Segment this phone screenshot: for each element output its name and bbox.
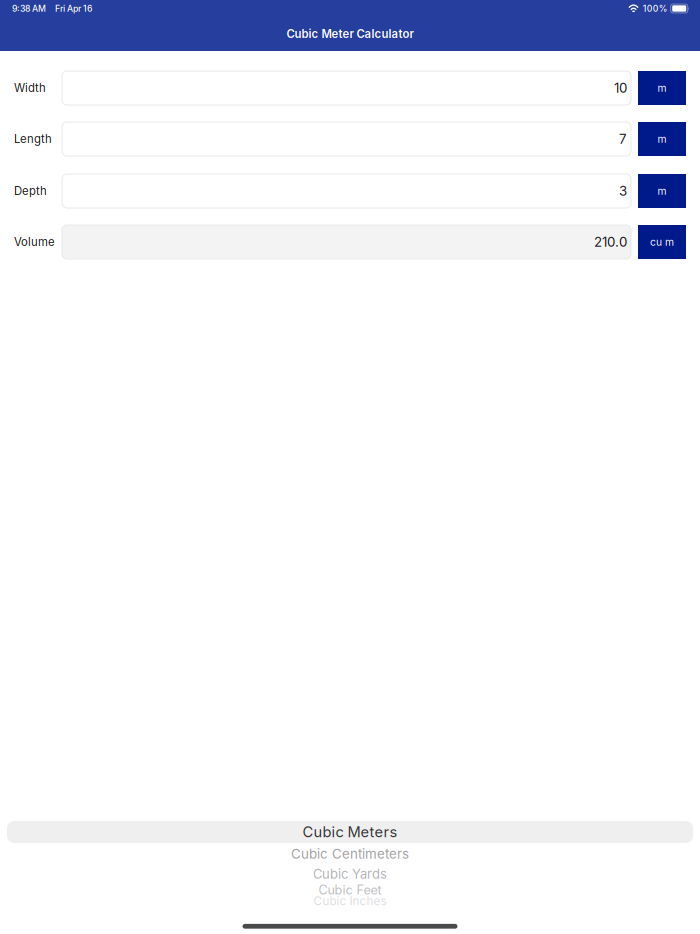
button[interactable]: m — [638, 71, 686, 105]
button[interactable]: cu m — [638, 225, 686, 259]
staticText: Length — [14, 132, 52, 146]
button[interactable]: 3 — [62, 174, 631, 208]
button[interactable]: Cubic Yards — [7, 865, 693, 883]
staticText: cu m — [650, 236, 674, 248]
staticText: m — [657, 133, 666, 145]
staticText: Cubic Inches — [313, 894, 386, 908]
button[interactable]: 10 — [62, 71, 631, 105]
staticText: m — [657, 185, 666, 197]
button[interactable]: Cubic Meters — [7, 821, 693, 843]
staticText: Cubic Centimeters — [291, 846, 409, 862]
staticText: Fri Apr 16 — [55, 3, 92, 14]
button[interactable]: Cubic Feet — [7, 882, 693, 898]
staticText: 10 — [614, 80, 627, 96]
staticText: Cubic Feet — [318, 882, 381, 898]
staticText: m — [657, 82, 666, 94]
staticText: Cubic Meter Calculator — [286, 27, 413, 41]
staticText: 7 — [619, 131, 627, 147]
staticText: Depth — [14, 184, 47, 198]
staticText: Cubic Meters — [302, 823, 397, 841]
button[interactable]: m — [638, 174, 686, 208]
staticText: 3 — [619, 183, 627, 199]
staticText: 100% — [643, 3, 668, 14]
button[interactable]: 210.0 — [62, 225, 631, 259]
staticText: Width — [14, 81, 46, 95]
button[interactable]: 7 — [62, 122, 631, 156]
staticText: 210.0 — [594, 234, 627, 250]
staticText: 9:38 AM — [12, 3, 46, 14]
button[interactable]: Cubic Centimeters — [7, 844, 693, 864]
button[interactable]: m — [638, 122, 686, 156]
staticText: Volume — [14, 235, 55, 249]
button[interactable]: Cubic Inches — [7, 894, 693, 908]
staticText: Cubic Yards — [313, 866, 387, 882]
